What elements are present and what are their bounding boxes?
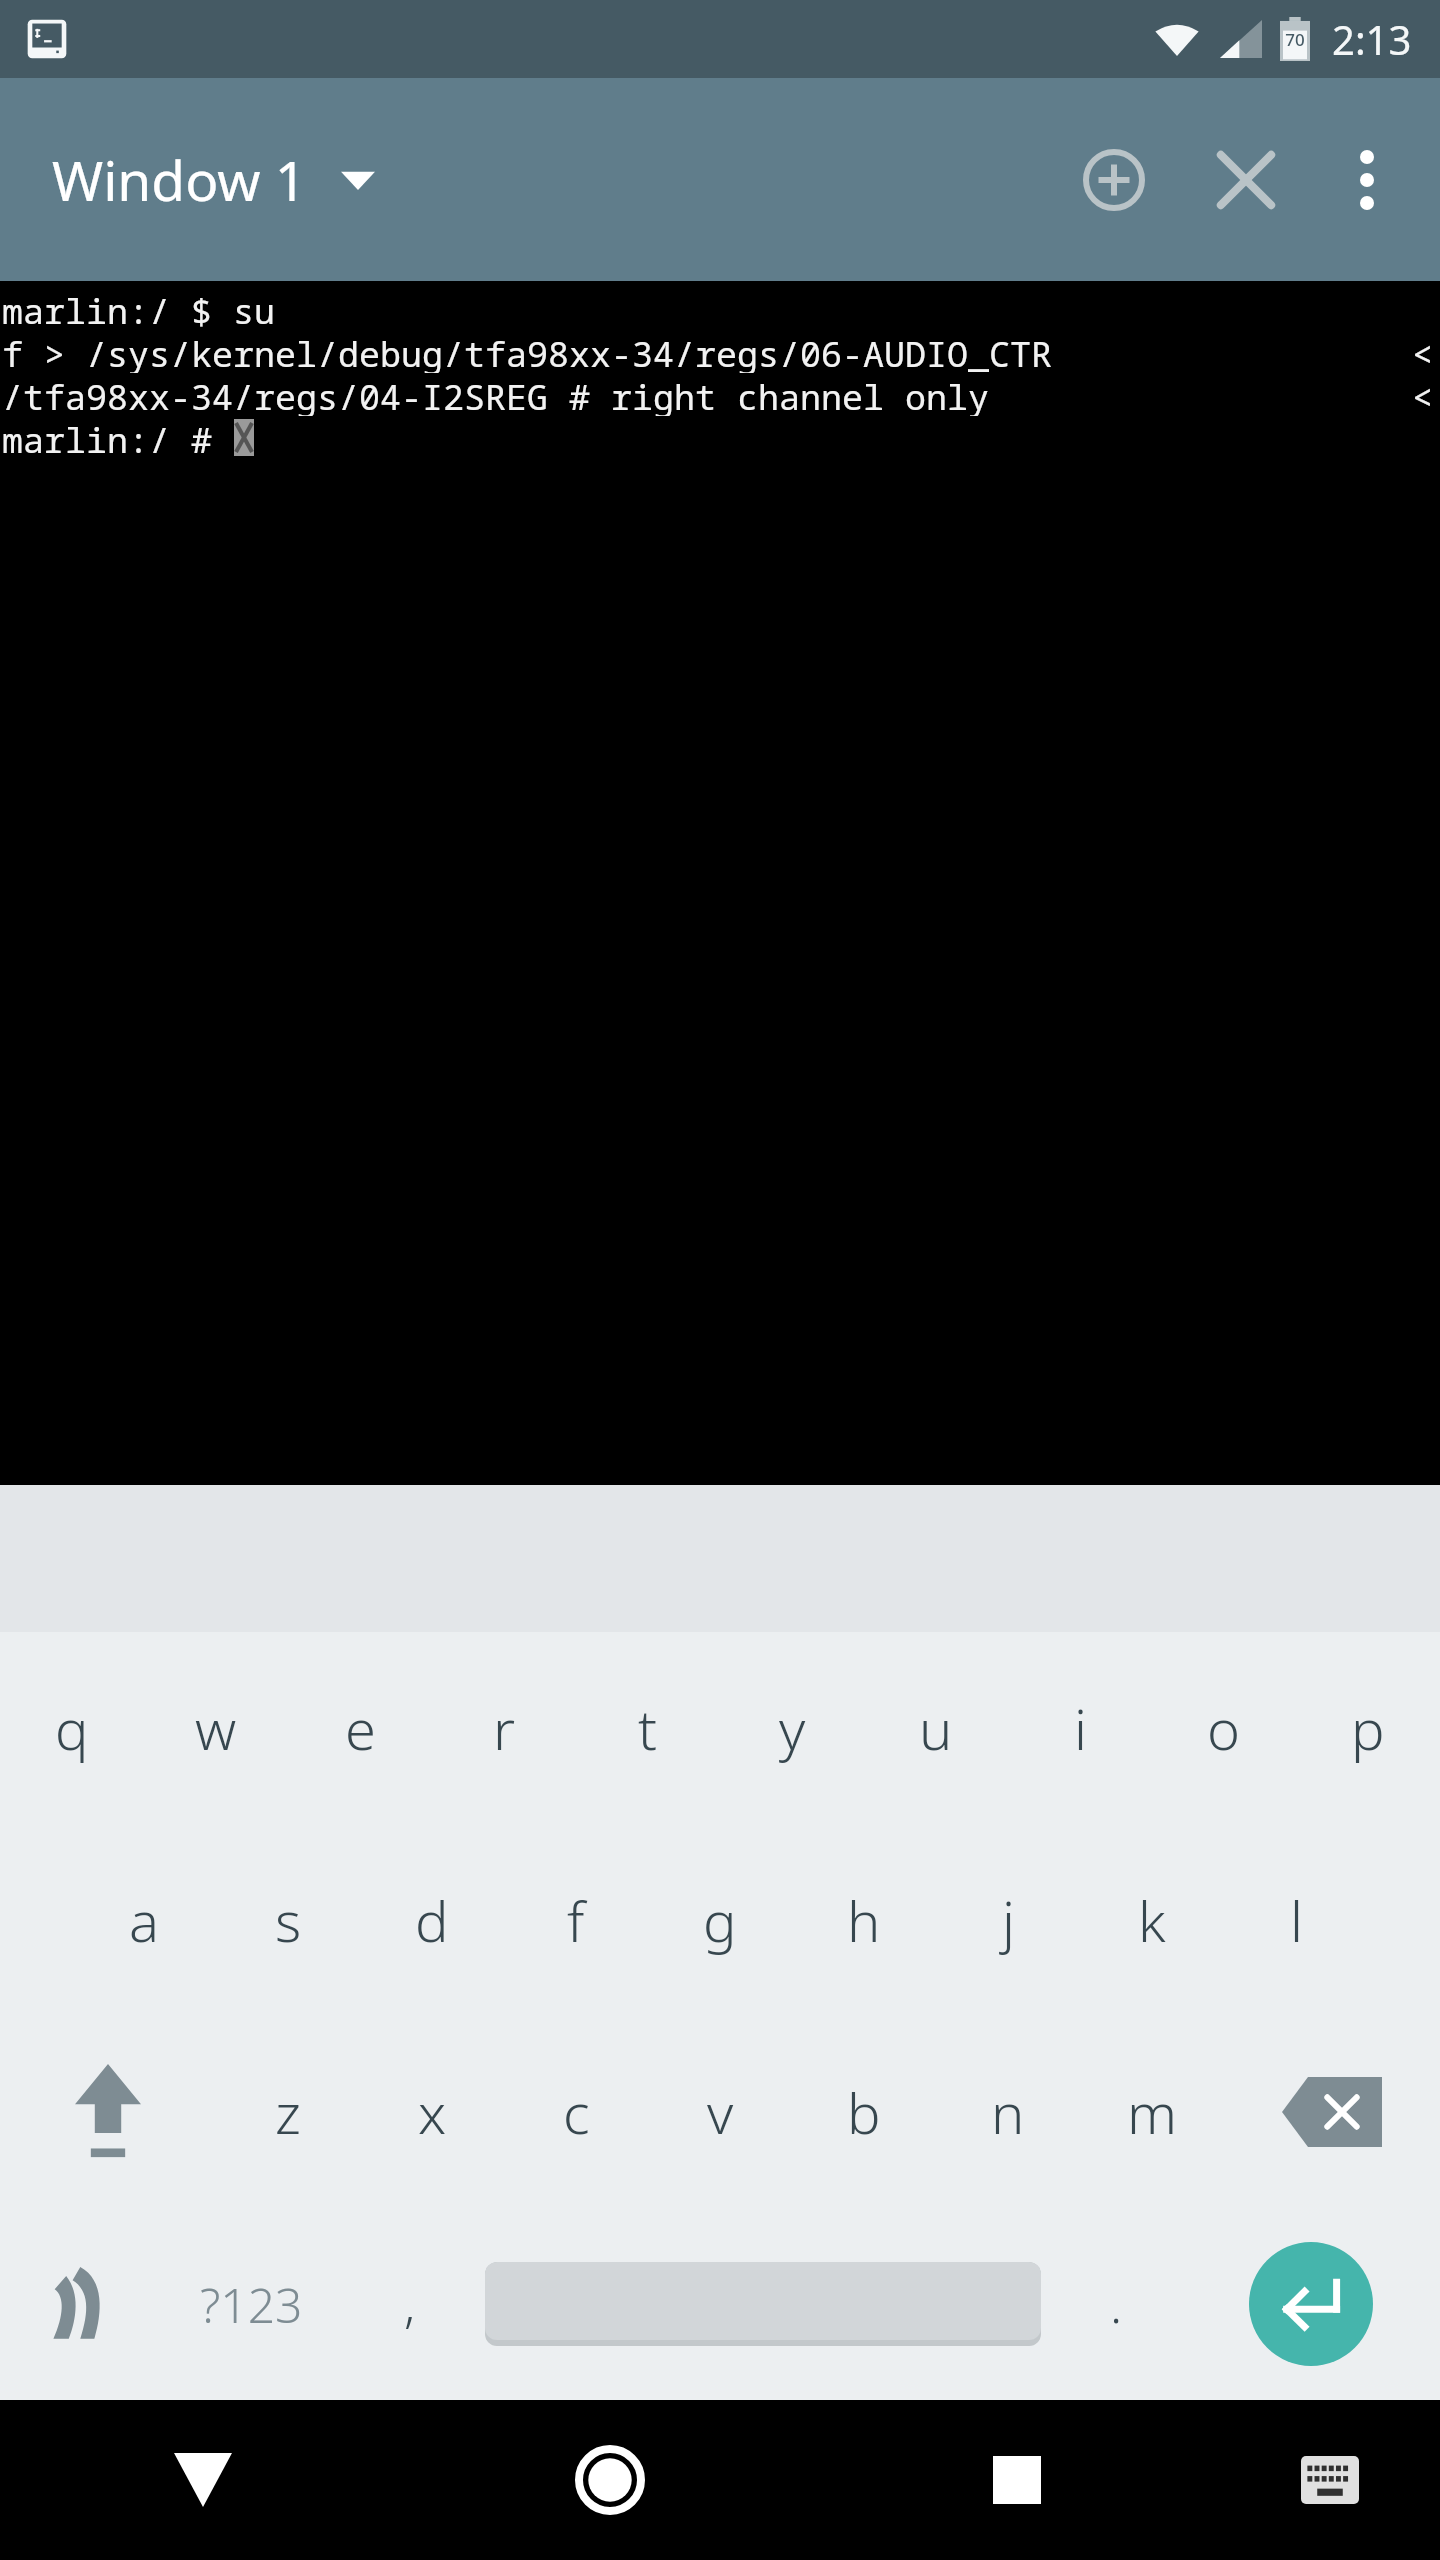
staticText: , bbox=[404, 2270, 416, 2338]
button[interactable]: Recent apps bbox=[813, 2400, 1220, 2560]
button[interactable]: r bbox=[432, 1632, 576, 1824]
button[interactable]: j bbox=[936, 1824, 1080, 2016]
staticText: d bbox=[415, 1882, 449, 1958]
button[interactable]: b bbox=[792, 2016, 936, 2208]
staticText: p bbox=[1351, 1690, 1385, 1766]
staticText: marlin:/ $ su bbox=[2, 287, 276, 330]
staticText: w bbox=[195, 1690, 237, 1766]
button[interactable]: Home bbox=[406, 2400, 813, 2560]
button[interactable]: n bbox=[936, 2016, 1080, 2208]
button[interactable]: ?123 bbox=[158, 2208, 345, 2400]
button[interactable]: New window bbox=[1048, 114, 1180, 246]
staticText: marlin:/ # bbox=[2, 416, 234, 459]
button[interactable]: Switch keyboard bbox=[1220, 2400, 1440, 2560]
button[interactable]: Glide typing bbox=[0, 2208, 158, 2400]
button[interactable]: c bbox=[504, 2016, 648, 2208]
button[interactable]: . bbox=[1051, 2208, 1181, 2400]
button[interactable]: g bbox=[648, 1824, 792, 2016]
staticText: Window 1 bbox=[52, 142, 307, 217]
button[interactable]: s bbox=[216, 1824, 360, 2016]
staticText: y bbox=[779, 1690, 806, 1766]
staticText: c bbox=[563, 2074, 590, 2150]
button[interactable]: i bbox=[1008, 1632, 1152, 1824]
button[interactable]: e bbox=[288, 1632, 432, 1824]
staticText: g bbox=[703, 1882, 737, 1958]
button[interactable]: q bbox=[0, 1632, 144, 1824]
button[interactable]: , bbox=[345, 2208, 475, 2400]
staticText: i bbox=[1074, 1690, 1087, 1766]
button[interactable]: f bbox=[504, 1824, 648, 2016]
staticText: n bbox=[991, 2074, 1025, 2150]
button[interactable]: z bbox=[216, 2016, 360, 2208]
button[interactable]: a bbox=[72, 1824, 216, 2016]
button[interactable]: w bbox=[144, 1632, 288, 1824]
staticText: j bbox=[1002, 1882, 1015, 1958]
button[interactable]: Close window bbox=[1180, 114, 1312, 246]
staticText: r bbox=[493, 1690, 516, 1766]
button[interactable]: v bbox=[648, 2016, 792, 2208]
staticText: b bbox=[847, 2074, 881, 2150]
button[interactable]: o bbox=[1152, 1632, 1296, 1824]
staticText: e bbox=[345, 1690, 376, 1766]
staticText: l bbox=[1290, 1882, 1303, 1958]
button[interactable]: m bbox=[1080, 2016, 1224, 2208]
button[interactable]: y bbox=[720, 1632, 864, 1824]
staticText: 2:13 bbox=[1332, 12, 1412, 66]
button[interactable]: Shift bbox=[0, 2016, 216, 2208]
staticText: s bbox=[275, 1882, 302, 1958]
staticText: m bbox=[1127, 2074, 1178, 2150]
button[interactable]: p bbox=[1296, 1632, 1440, 1824]
button[interactable]: Space bbox=[485, 2262, 1041, 2346]
button[interactable]: k bbox=[1080, 1824, 1224, 2016]
button[interactable]: marlin:/ $ su bbox=[0, 281, 1440, 1485]
staticText: < bbox=[1412, 330, 1434, 373]
button[interactable]: h bbox=[792, 1824, 936, 2016]
staticText: x bbox=[418, 2074, 447, 2150]
staticText: z bbox=[275, 2074, 301, 2150]
staticText: h bbox=[847, 1882, 881, 1958]
button[interactable]: Enter bbox=[1181, 2208, 1440, 2400]
button[interactable]: Backspace bbox=[1224, 2016, 1440, 2208]
staticText: f > /sys/kernel/debug/tfa98xx-34/regs/06… bbox=[2, 330, 1053, 373]
staticText: < bbox=[1412, 373, 1434, 416]
staticText: /tfa98xx-34/regs/04-I2SREG # right chann… bbox=[2, 373, 990, 416]
staticText: ?123 bbox=[200, 2272, 303, 2337]
button[interactable]: l bbox=[1224, 1824, 1368, 2016]
button[interactable]: x bbox=[360, 2016, 504, 2208]
staticText: a bbox=[129, 1882, 160, 1958]
staticText: v bbox=[707, 2074, 734, 2150]
staticText: . bbox=[1110, 2270, 1123, 2338]
staticText: t bbox=[638, 1690, 658, 1766]
staticText: o bbox=[1207, 1690, 1241, 1766]
button[interactable]: t bbox=[576, 1632, 720, 1824]
button[interactable]: u bbox=[864, 1632, 1008, 1824]
staticText: q bbox=[55, 1690, 89, 1766]
button[interactable]: More options bbox=[1312, 125, 1422, 235]
staticText: 70 bbox=[1285, 28, 1305, 51]
staticText: k bbox=[1138, 1882, 1166, 1958]
staticText: f bbox=[567, 1882, 585, 1958]
button[interactable]: Back bbox=[0, 2400, 406, 2560]
staticText: u bbox=[919, 1690, 953, 1766]
button[interactable]: Window 1 bbox=[44, 124, 383, 235]
button[interactable]: d bbox=[360, 1824, 504, 2016]
